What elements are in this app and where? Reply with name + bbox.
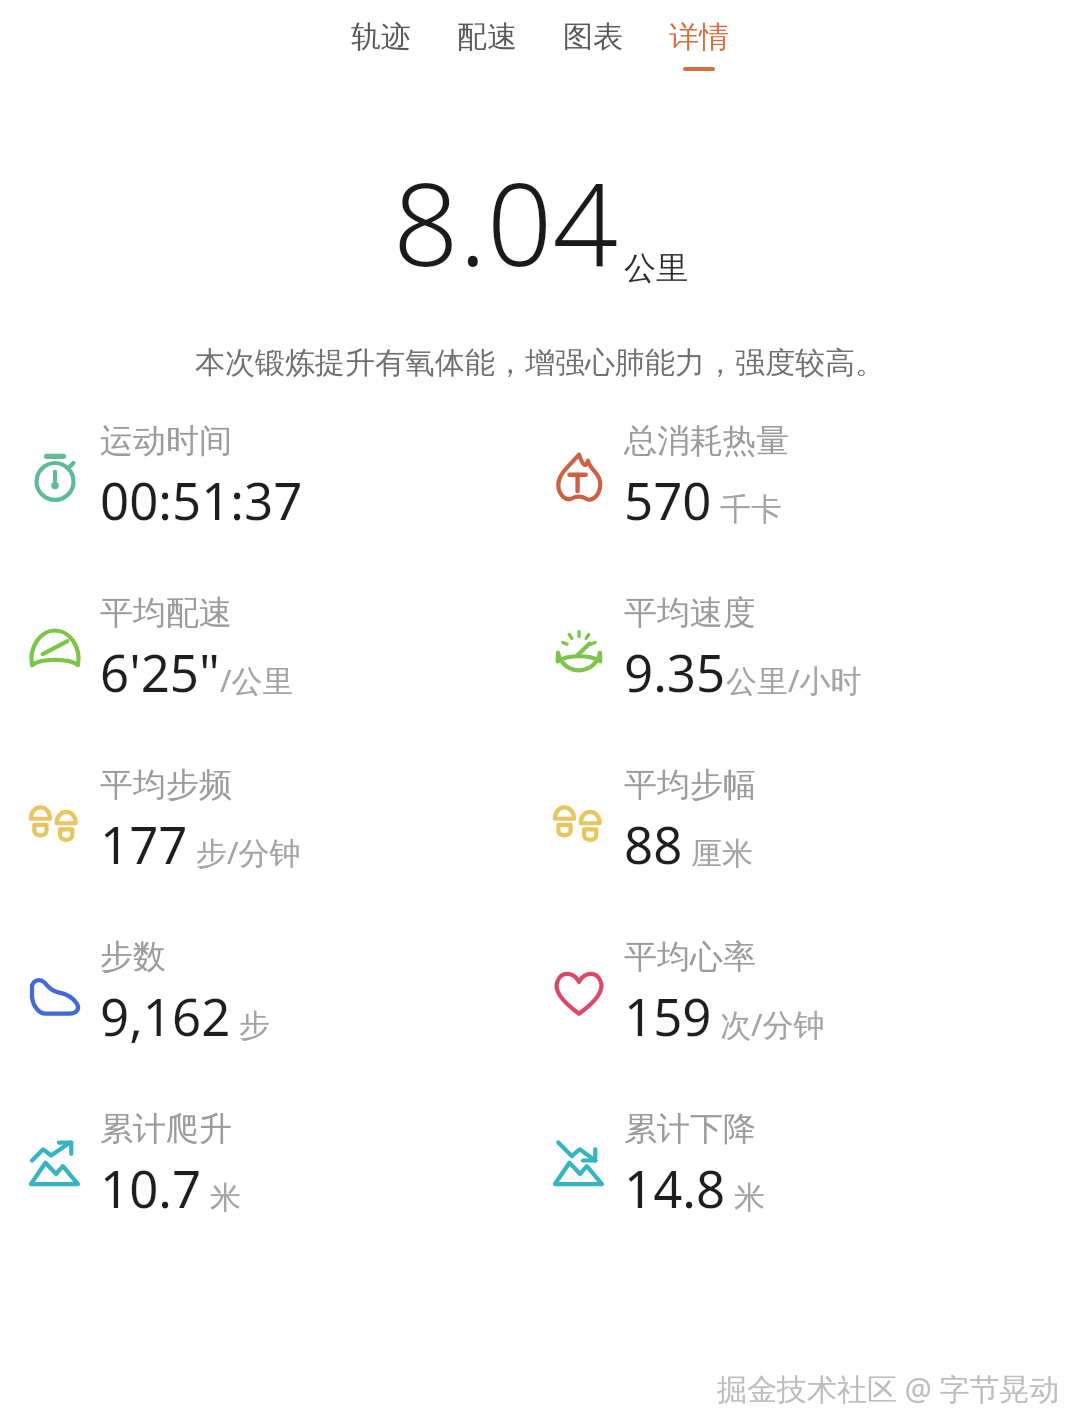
staticText: 步数 xyxy=(100,936,166,978)
staticText: 159 xyxy=(624,981,712,1050)
staticText: 00:51:37 xyxy=(100,465,303,534)
other: 平均配速 xyxy=(16,610,94,688)
staticText: 570 xyxy=(624,465,712,534)
other: 平均步频 xyxy=(16,782,94,860)
other: 步数 xyxy=(16,954,94,1032)
staticText: 平均步频 xyxy=(100,764,232,806)
staticText: 公里 xyxy=(624,248,688,288)
staticText: 累计下降 xyxy=(624,1108,756,1150)
staticText: 配速 xyxy=(457,18,517,56)
staticText: 掘金技术社区 @ 字节晃动 xyxy=(717,1368,1060,1409)
staticText: 平均配速 xyxy=(100,592,232,634)
staticText: 图表 xyxy=(563,18,623,56)
button[interactable]: 详情 xyxy=(646,18,752,71)
staticText: 米 xyxy=(726,1175,766,1217)
staticText: 累计爬升 xyxy=(100,1108,232,1150)
other: 平均心率 xyxy=(540,954,618,1032)
other: 运动时间 xyxy=(16,438,94,516)
button[interactable]: 轨迹 xyxy=(328,18,434,71)
staticText: 轨迹 xyxy=(351,18,411,56)
button[interactable]: 平均步频 xyxy=(16,764,540,878)
staticText: 厘米 xyxy=(683,831,754,873)
staticText: 平均心率 xyxy=(624,936,756,978)
button[interactable]: 累计下降 xyxy=(540,1108,1080,1222)
other: 总消耗热量 xyxy=(540,438,618,516)
staticText: 平均步幅 xyxy=(624,764,756,806)
staticText: 步/分钟 xyxy=(188,831,301,873)
staticText: 详情 xyxy=(669,18,729,56)
staticText: 米 xyxy=(202,1175,242,1217)
staticText: 本次锻炼提升有氧体能，增强心肺能力，强度较高。 xyxy=(195,344,885,382)
button[interactable]: 运动时间 xyxy=(16,420,540,534)
button[interactable]: 配速 xyxy=(434,18,540,71)
staticText: 公里/小时 xyxy=(726,659,862,701)
staticText: /公里 xyxy=(220,659,294,701)
staticText: 10.7 xyxy=(100,1153,202,1222)
button[interactable]: 平均速度 xyxy=(540,592,1080,706)
button[interactable]: 平均步幅 xyxy=(540,764,1080,878)
staticText: 8.04 xyxy=(393,143,619,300)
staticText: 6'25" xyxy=(100,637,220,706)
staticText: 9,162 xyxy=(100,981,231,1050)
button[interactable]: 平均心率 xyxy=(540,936,1080,1050)
button[interactable]: 总消耗热量 xyxy=(540,420,1080,534)
button[interactable]: 平均配速 xyxy=(16,592,540,706)
staticText: 9.35 xyxy=(624,637,726,706)
other: 平均速度 xyxy=(540,610,618,688)
staticText: 14.8 xyxy=(624,1153,726,1222)
staticText: 177 xyxy=(100,809,188,878)
staticText: 总消耗热量 xyxy=(624,420,789,462)
staticText: 次/分钟 xyxy=(712,1003,825,1045)
button[interactable]: 图表 xyxy=(540,18,646,71)
staticText: 千卡 xyxy=(712,487,783,529)
other: 累计下降 xyxy=(540,1126,618,1204)
other: 平均步幅 xyxy=(540,782,618,860)
staticText: 平均速度 xyxy=(624,592,756,634)
other: 累计爬升 xyxy=(16,1126,94,1204)
staticText: 步 xyxy=(231,1003,271,1045)
button[interactable]: 累计爬升 xyxy=(16,1108,540,1222)
button[interactable]: 步数 xyxy=(16,936,540,1050)
staticText: 88 xyxy=(624,809,683,878)
staticText: 运动时间 xyxy=(100,420,232,462)
